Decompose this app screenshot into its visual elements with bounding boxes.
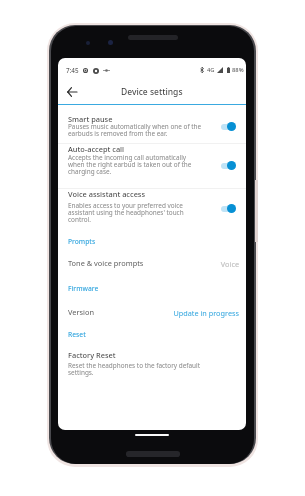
button[interactable]: Toggle: [220, 203, 238, 215]
button[interactable]: [58, 326, 246, 341]
staticText: Voice: [220, 259, 239, 269]
staticText: Auto-accept call: [68, 144, 125, 154]
button[interactable]: [58, 186, 246, 228]
button[interactable]: [58, 141, 246, 187]
staticText: 88%: [232, 66, 244, 74]
staticText: Version: [68, 307, 94, 317]
staticText: Accepts the incoming call automatically …: [68, 153, 192, 175]
staticText: Update in progress: [173, 308, 239, 318]
button[interactable]: [58, 250, 246, 272]
staticText: Firmware: [68, 284, 99, 293]
button[interactable]: [58, 299, 246, 321]
button[interactable]: Toggle: [220, 121, 238, 133]
staticText: 4G: [207, 66, 215, 74]
button[interactable]: [58, 111, 246, 143]
button[interactable]: [58, 347, 246, 380]
button[interactable]: [58, 233, 246, 248]
staticText: Device settings: [121, 86, 183, 98]
staticText: Prompts: [68, 237, 96, 246]
staticText: Enables access to your preferred voice a…: [68, 201, 184, 223]
button[interactable]: [58, 280, 246, 295]
button[interactable]: Back: [62, 82, 82, 102]
staticText: 7:45: [66, 66, 79, 75]
staticText: Reset: [68, 330, 86, 339]
staticText: Smart pause: [68, 114, 113, 124]
staticText: Reset the headphones to the factory defa…: [68, 361, 200, 376]
button[interactable]: Toggle: [220, 160, 238, 172]
staticText: Pauses music automatically when one of t…: [68, 122, 202, 137]
staticText: Tone & voice prompts: [68, 258, 144, 268]
staticText: Voice assistant access: [68, 189, 146, 199]
staticText: Factory Reset: [68, 350, 116, 360]
